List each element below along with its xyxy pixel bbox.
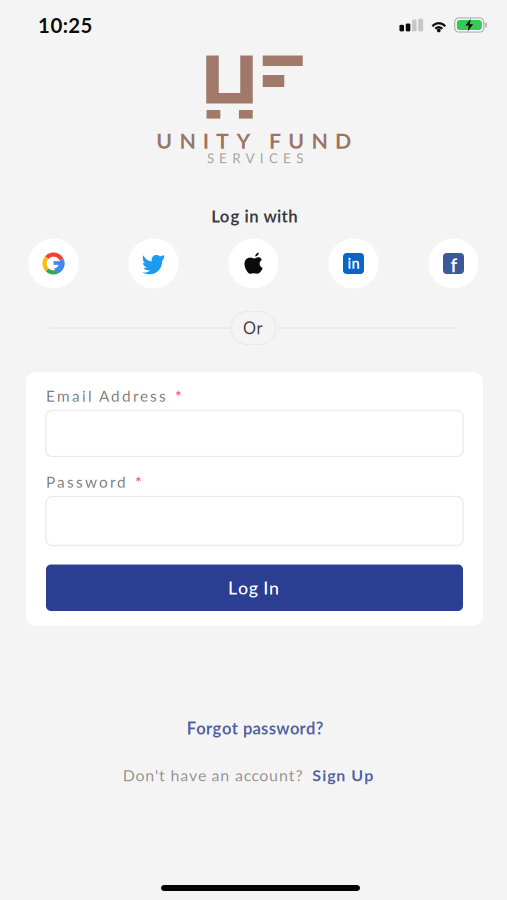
staticText: Forgot password? bbox=[187, 718, 325, 738]
staticText: f bbox=[450, 254, 457, 276]
staticText: 10:25 bbox=[38, 13, 94, 37]
staticText: in bbox=[347, 254, 359, 272]
button[interactable]: Sign in with Twitter bbox=[128, 238, 178, 288]
staticText: Email Address bbox=[46, 387, 169, 405]
staticText: Sign Up bbox=[312, 765, 375, 785]
staticText: * bbox=[135, 472, 142, 491]
button[interactable]: Sign in with LinkedIn bbox=[328, 238, 378, 288]
button[interactable]: Sign in with Google bbox=[28, 238, 78, 288]
staticText: Don't have an account? bbox=[123, 765, 304, 785]
staticText: * bbox=[175, 386, 182, 405]
staticText: UNITY FUND bbox=[156, 128, 359, 153]
button[interactable]: Sign Up bbox=[312, 765, 375, 785]
button[interactable]: Sign in with Apple bbox=[228, 238, 278, 288]
staticText: Password bbox=[46, 473, 129, 491]
button[interactable]: Sign in with Facebook bbox=[428, 238, 478, 288]
staticText: Log In bbox=[228, 577, 281, 598]
staticText: SERVICES bbox=[207, 150, 309, 166]
staticText: Log in with bbox=[211, 206, 299, 226]
staticText: Or bbox=[243, 318, 264, 338]
button[interactable]: Forgot password? bbox=[187, 718, 325, 738]
button[interactable]: Log In bbox=[46, 564, 463, 611]
